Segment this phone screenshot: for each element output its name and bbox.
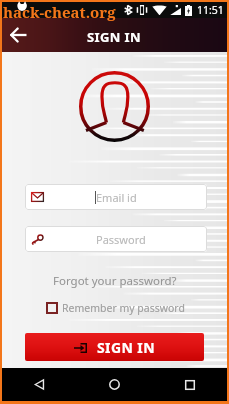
staticText: 11:51 xyxy=(197,3,224,17)
staticText: SIGN IN xyxy=(87,28,142,46)
staticText: Email id xyxy=(96,190,137,205)
button[interactable]: Remember my password xyxy=(46,301,207,315)
button[interactable]: Password xyxy=(25,226,207,252)
button[interactable]: Email id xyxy=(25,184,207,210)
button[interactable]: Recent apps xyxy=(152,368,227,401)
button[interactable]: SIGN IN xyxy=(25,333,204,361)
button[interactable]: Home xyxy=(77,368,152,401)
staticText: SIGN IN xyxy=(97,338,155,357)
staticText: Remember my password xyxy=(62,301,185,315)
button[interactable]: Navigate up xyxy=(7,24,29,46)
staticText: Password xyxy=(96,232,146,247)
button[interactable]: Forgot your password? xyxy=(47,272,183,290)
button[interactable]: Back xyxy=(2,368,77,401)
staticText: hack-cheat.org xyxy=(3,2,116,22)
